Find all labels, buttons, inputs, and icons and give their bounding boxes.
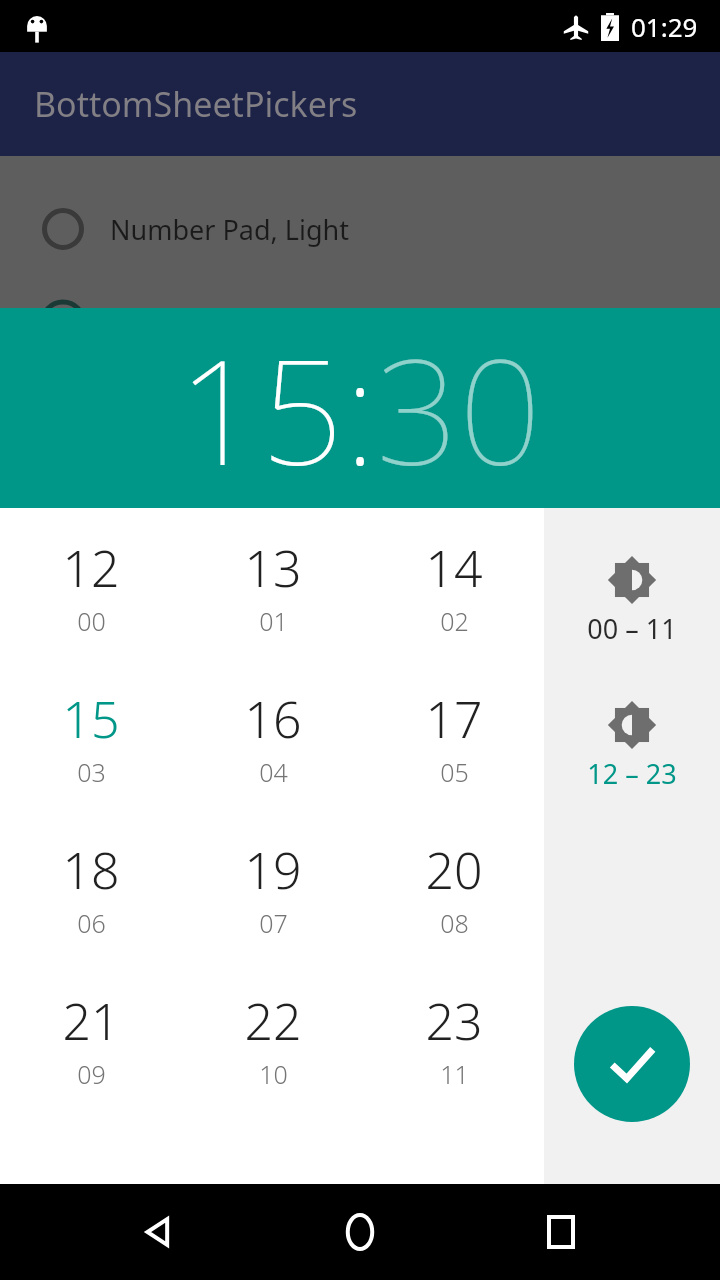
staticText: 15	[62, 685, 120, 753]
staticText: 04	[259, 755, 288, 789]
staticText: 03	[77, 755, 106, 789]
staticText: :	[344, 310, 376, 507]
button[interactable]: 14	[363, 508, 544, 659]
staticText: 06	[77, 906, 106, 940]
button[interactable]: 00 – 11	[544, 550, 720, 653]
staticText: 19	[244, 836, 302, 904]
button[interactable]: 12	[0, 508, 182, 659]
staticText: 01:29	[631, 9, 698, 44]
button[interactable]: Confirm	[574, 1006, 690, 1122]
staticText: 09	[77, 1057, 106, 1091]
staticText: 21	[62, 987, 120, 1055]
staticText: 07	[259, 906, 288, 940]
staticText: 13	[244, 534, 302, 602]
button[interactable]: 20	[363, 810, 544, 961]
button[interactable]: 22	[182, 961, 363, 1112]
staticText: 14	[425, 534, 483, 602]
staticText: 12	[62, 534, 120, 602]
staticText: Number Pad, Light	[110, 211, 349, 248]
staticText: 20	[425, 836, 483, 904]
staticText: 17	[425, 685, 483, 753]
button[interactable]: 18	[0, 810, 182, 961]
staticText: 16	[244, 685, 302, 753]
button[interactable]: Back	[117, 1190, 201, 1274]
staticText: BottomSheetPickers	[34, 81, 358, 127]
staticText: 10	[259, 1057, 288, 1091]
staticText: 01	[259, 604, 288, 638]
button[interactable]: 19	[182, 810, 363, 961]
staticText: 11	[440, 1057, 469, 1091]
button[interactable]: 12 – 23	[544, 695, 720, 798]
staticText: 08	[440, 906, 469, 940]
button[interactable]: 13	[182, 508, 363, 659]
staticText: 05	[440, 755, 469, 789]
button[interactable]: 23	[363, 961, 544, 1112]
button[interactable]: 15	[178, 310, 344, 507]
button[interactable]: 17	[363, 659, 544, 810]
staticText: 12 – 23	[587, 755, 677, 792]
button[interactable]: 30	[376, 310, 542, 507]
staticText: 18	[62, 836, 120, 904]
button[interactable]: 15	[0, 659, 182, 810]
button[interactable]: 16	[182, 659, 363, 810]
button[interactable]: Recents	[519, 1190, 603, 1274]
staticText: 02	[440, 604, 469, 638]
button[interactable]: Home	[318, 1190, 402, 1274]
button[interactable]: 21	[0, 961, 182, 1112]
staticText: 23	[425, 987, 483, 1055]
staticText: 22	[244, 987, 302, 1055]
staticText: 00 – 11	[587, 610, 677, 647]
staticText: 00	[77, 604, 106, 638]
